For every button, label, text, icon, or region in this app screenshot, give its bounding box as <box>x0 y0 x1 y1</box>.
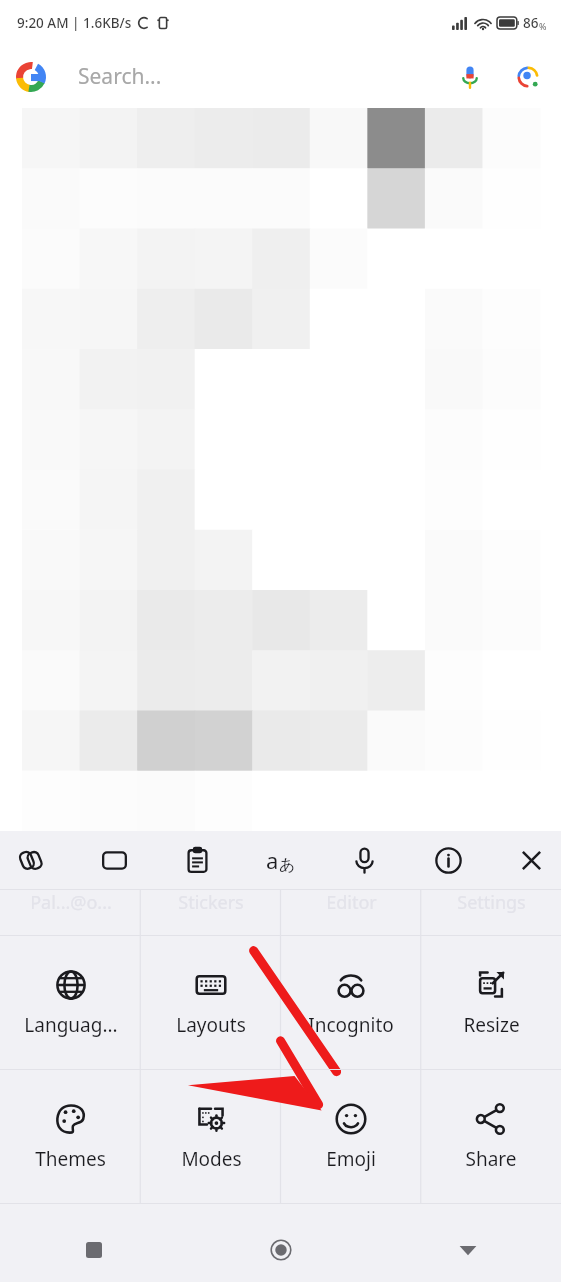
button[interactable]: Info <box>426 838 470 882</box>
button[interactable]: Incognito <box>281 936 421 1069</box>
button[interactable]: Modes <box>141 1070 281 1203</box>
button[interactable]: Search... <box>0 45 561 108</box>
button[interactable]: Settings <box>421 890 561 915</box>
button[interactable]: Themes <box>0 1070 141 1203</box>
button[interactable]: Languag... <box>0 936 141 1069</box>
staticText: あ <box>279 855 296 875</box>
button[interactable]: Clipboard stack <box>8 838 52 882</box>
staticText: Resize <box>463 1012 520 1038</box>
staticText: Themes <box>35 1146 106 1172</box>
button[interactable]: GIF <box>92 838 136 882</box>
button[interactable]: Editor <box>281 890 421 915</box>
button[interactable]: Emoji <box>281 1070 421 1203</box>
button[interactable]: Pal...@o... <box>0 890 141 915</box>
button[interactable]: Recents <box>0 1218 187 1282</box>
button[interactable]: Translate <box>259 838 303 882</box>
button[interactable]: Stickers <box>141 890 281 915</box>
staticText: Incognito <box>308 1012 394 1038</box>
staticText: Layouts <box>176 1012 246 1038</box>
staticText: Settings <box>457 890 526 915</box>
staticText: Editor <box>326 890 377 915</box>
button[interactable]: Close <box>509 838 553 882</box>
button[interactable]: Resize <box>421 936 561 1069</box>
staticText: Modes <box>181 1146 242 1172</box>
staticText: Pal...@o... <box>30 890 112 915</box>
staticText: 86 <box>523 14 539 32</box>
button[interactable]: Back <box>374 1218 561 1282</box>
staticText: a <box>266 845 279 875</box>
staticText: Share <box>465 1146 517 1172</box>
staticText: Stickers <box>178 890 244 915</box>
button[interactable]: Share <box>421 1070 561 1203</box>
staticText: Search... <box>78 62 162 91</box>
button[interactable]: Clipboard <box>175 838 219 882</box>
button[interactable]: Home <box>187 1218 374 1282</box>
staticText: Emoji <box>326 1146 376 1172</box>
staticText: 9:20 AM | 1.6KB/s <box>17 14 132 32</box>
button[interactable]: Google Lens <box>511 60 545 94</box>
button[interactable]: Voice input <box>342 838 386 882</box>
button[interactable]: Voice search <box>453 60 487 94</box>
staticText: Languag... <box>24 1012 118 1038</box>
button[interactable]: Layouts <box>141 936 281 1069</box>
staticText: % <box>539 20 547 32</box>
